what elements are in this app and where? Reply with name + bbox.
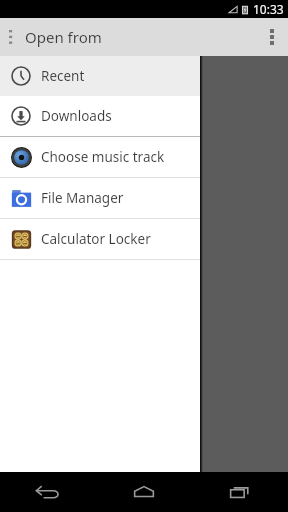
button[interactable]: Downloads bbox=[0, 96, 200, 136]
button[interactable]: Open navigation drawer bbox=[0, 18, 22, 56]
button[interactable]: File Manager bbox=[0, 178, 200, 218]
staticText: 10:33 bbox=[253, 1, 284, 17]
button[interactable]: More options bbox=[256, 18, 288, 56]
button[interactable]: Recent apps bbox=[192, 472, 288, 512]
button[interactable]: Home bbox=[96, 472, 192, 512]
staticText: Downloads bbox=[41, 107, 112, 125]
button[interactable]: Calculator Locker bbox=[0, 219, 200, 259]
staticText: Choose music track bbox=[41, 148, 165, 166]
button[interactable]: Choose music track bbox=[0, 137, 200, 177]
button[interactable]: Back bbox=[0, 472, 96, 512]
button[interactable]: Recent bbox=[0, 56, 200, 96]
staticText: File Manager bbox=[41, 189, 124, 207]
staticText: Calculator Locker bbox=[41, 230, 151, 248]
staticText: Open from bbox=[25, 27, 102, 47]
staticText: Recent bbox=[41, 67, 85, 85]
